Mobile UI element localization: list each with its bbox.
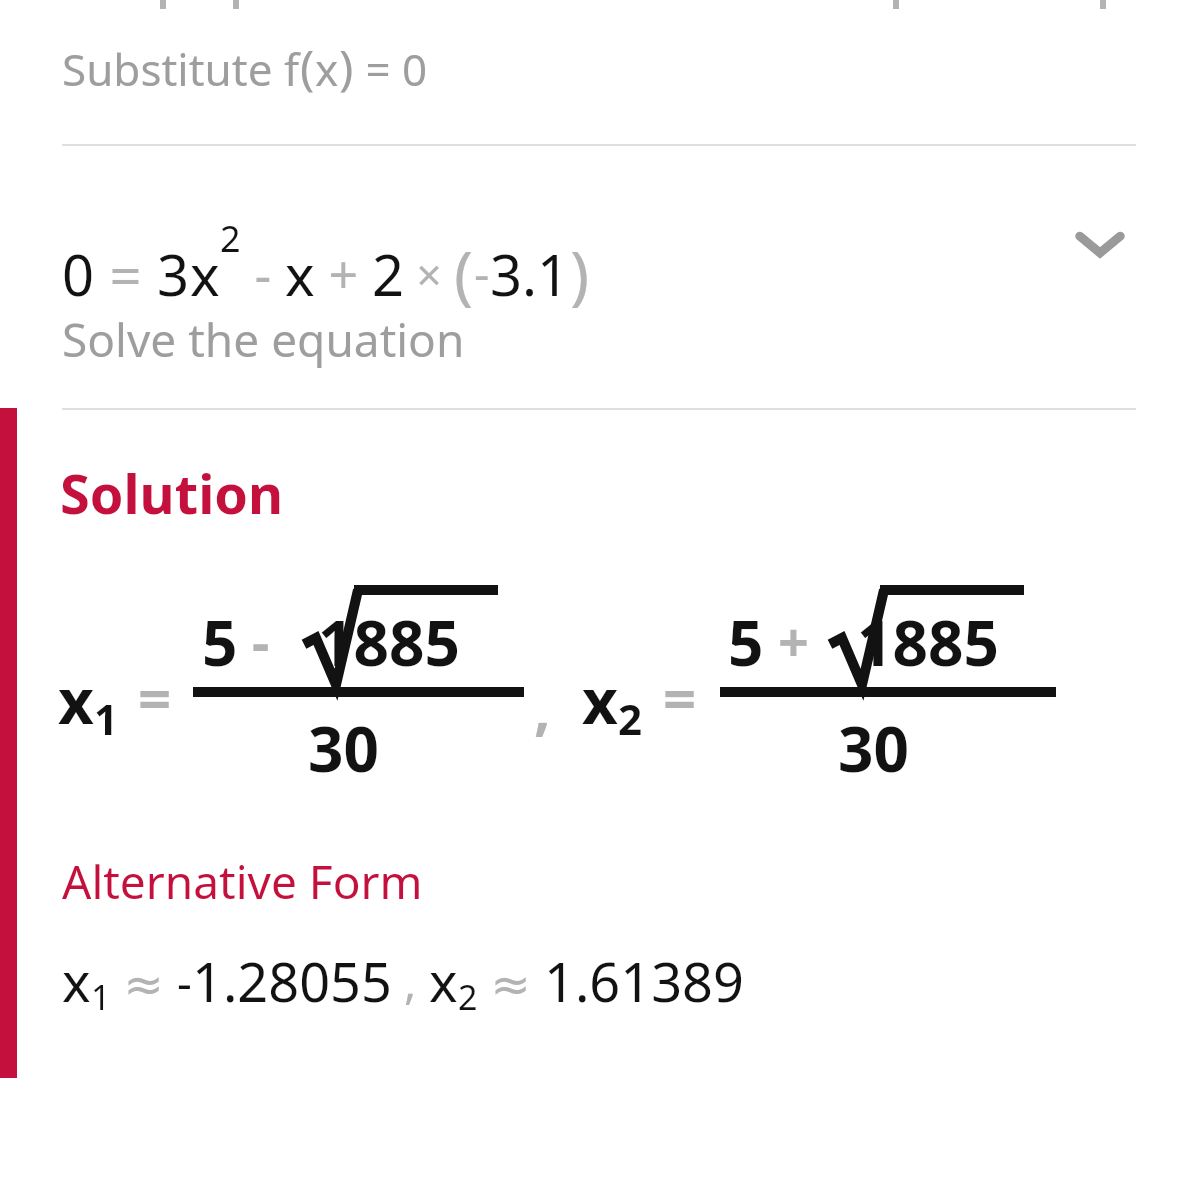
- staticText: ,: [534, 668, 551, 747]
- staticText: 1.61389: [544, 944, 744, 1018]
- staticText: (: [300, 34, 315, 99]
- staticText: 3: [157, 236, 190, 312]
- staticText: 1: [91, 974, 111, 1020]
- staticText: =: [95, 236, 157, 312]
- staticText: ): [570, 230, 590, 317]
- staticText: -: [238, 604, 284, 678]
- staticText: =: [138, 658, 172, 737]
- staticText: ≈: [111, 950, 177, 1015]
- staticText: Alternative Form: [62, 850, 423, 913]
- staticText: 30: [308, 706, 379, 790]
- staticText: = 0: [354, 39, 428, 99]
- staticText: 1885: [857, 600, 999, 684]
- staticText: 0: [62, 236, 95, 312]
- staticText: x: [58, 658, 94, 742]
- staticText: x: [62, 944, 91, 1018]
- staticText: 1885: [318, 600, 460, 684]
- staticText: ,: [392, 950, 429, 1013]
- staticText: Solve the equation: [62, 308, 465, 371]
- staticText: 5: [728, 600, 764, 684]
- staticText: 2: [372, 236, 405, 312]
- staticText: -: [177, 950, 192, 1013]
- staticText: Solution: [60, 456, 284, 530]
- staticText: ×: [405, 244, 454, 304]
- staticText: x: [285, 236, 315, 312]
- staticText: =: [663, 658, 697, 737]
- staticText: ≈: [478, 950, 544, 1015]
- button[interactable]: Collapse step: [1062, 206, 1138, 282]
- staticText: 2: [618, 690, 643, 747]
- staticText: 5: [202, 600, 238, 684]
- staticText: +: [764, 604, 823, 678]
- staticText: 2: [458, 974, 478, 1020]
- staticText: Substitute f: [62, 39, 300, 99]
- staticText: (: [454, 230, 474, 317]
- staticText: 1: [94, 690, 119, 747]
- staticText: -: [241, 238, 285, 309]
- staticText: 3.1: [490, 236, 570, 312]
- staticText: x: [429, 944, 458, 1018]
- staticText: ): [339, 34, 354, 99]
- staticText: 2: [220, 214, 241, 263]
- staticText: 1.28055: [192, 944, 392, 1018]
- staticText: 30: [838, 706, 909, 790]
- staticText: x: [582, 658, 618, 742]
- staticText: x: [315, 39, 339, 99]
- staticText: +: [315, 238, 372, 309]
- staticText: x: [190, 236, 220, 312]
- staticText: -: [474, 240, 490, 305]
